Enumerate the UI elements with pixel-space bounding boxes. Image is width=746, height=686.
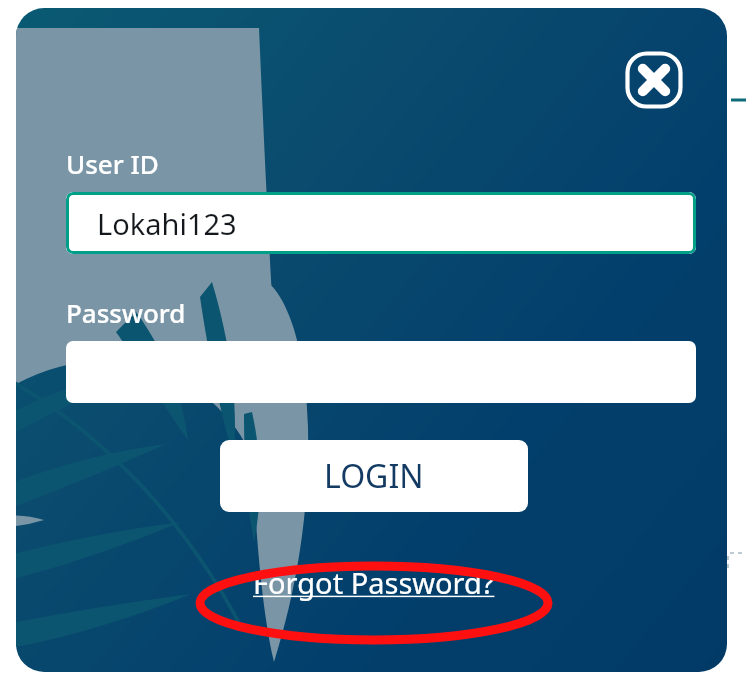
staticText: Forgot Password? bbox=[253, 563, 495, 602]
staticText: Password bbox=[66, 295, 186, 330]
staticText: LOGIN bbox=[324, 454, 424, 498]
staticText: User ID bbox=[66, 146, 159, 181]
button[interactable]: Lokahi123 bbox=[66, 192, 696, 254]
button[interactable]: Close bbox=[626, 52, 682, 108]
staticText: Lokahi123 bbox=[97, 204, 237, 243]
button[interactable]: Forgot Password? bbox=[247, 561, 501, 604]
button[interactable] bbox=[66, 341, 696, 403]
button[interactable]: LOGIN bbox=[220, 440, 528, 512]
